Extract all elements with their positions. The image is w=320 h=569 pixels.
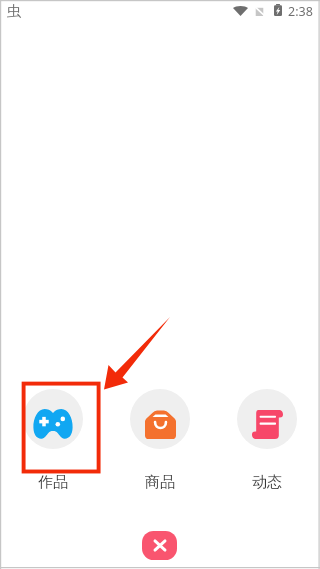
button[interactable]: 商品 bbox=[126, 389, 194, 492]
staticText: 商品 bbox=[126, 473, 194, 492]
button[interactable]: Close bbox=[142, 531, 177, 560]
staticText: 动态 bbox=[233, 473, 301, 492]
staticText: 作品 bbox=[19, 473, 87, 492]
staticText: 虫 bbox=[7, 2, 22, 20]
staticText: 2:38 bbox=[288, 3, 313, 20]
button[interactable]: 作品 bbox=[19, 389, 87, 492]
button[interactable]: 动态 bbox=[233, 389, 301, 492]
